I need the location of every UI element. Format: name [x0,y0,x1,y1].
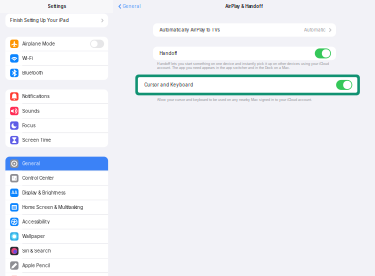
staticText: Apple Pencil [22,263,50,268]
button[interactable]: Focus [5,119,108,133]
staticText: Allow your cursor and keyboard to be use… [157,98,312,102]
button[interactable]: Accessibility [5,215,108,229]
button[interactable]: Cursor and Keyboard [138,77,357,93]
staticText: AA [11,190,17,195]
staticText: Automatic [304,27,326,33]
button[interactable]: Home Screen & Multitasking [5,200,108,214]
staticText: General [22,161,40,166]
staticText: Handoff [159,51,177,56]
staticText: Handoff lets you start something on one … [157,62,329,70]
button[interactable]: Siri & Search [5,244,108,258]
staticText: Home Screen & Multitasking [22,205,83,210]
staticText: Accessibility [22,219,50,225]
staticText: Settings [48,4,66,9]
button[interactable]: Airplane Mode [5,37,108,51]
button[interactable]: Touch ID & Passcode [5,273,108,276]
button[interactable]: Screen Time [5,133,108,147]
staticText: Airplane Mode [22,41,55,46]
button[interactable]: AA [5,186,108,200]
staticText: General [122,4,140,9]
staticText: Wi-Fi [22,56,33,61]
staticText: Siri & Search [22,248,51,254]
staticText: Sounds [22,108,39,114]
button[interactable]: Automatically AirPlay to TVs [153,23,336,37]
button[interactable]: Wallpaper [5,229,108,243]
staticText: AirPlay & Handoff [225,4,263,9]
button[interactable]: Wi-Fi [5,51,108,65]
button[interactable]: Control Center [5,171,108,185]
button[interactable]: Notifications [5,89,108,104]
button[interactable]: Handoff [153,47,336,60]
staticText: Automatically AirPlay to TVs [159,27,219,33]
button[interactable]: Apple Pencil [5,258,108,273]
button[interactable]: Bluetooth [5,66,108,80]
staticText: Bluetooth [22,70,43,76]
staticText: Display & Brightness [22,190,65,195]
staticText: Screen Time [22,137,51,143]
staticText: Notifications [22,94,49,99]
staticText: Wallpaper [22,234,45,239]
staticText: Finish Setting Up Your iPad [10,18,69,23]
button[interactable]: General [113,2,140,11]
staticText: Focus [22,123,35,128]
staticText: Control Center [22,175,54,181]
button[interactable]: General [5,157,108,171]
staticText: Cursor and Keyboard [144,82,193,88]
button[interactable]: Sounds [5,104,108,118]
button[interactable]: Finish Setting Up Your iPad [5,14,108,27]
